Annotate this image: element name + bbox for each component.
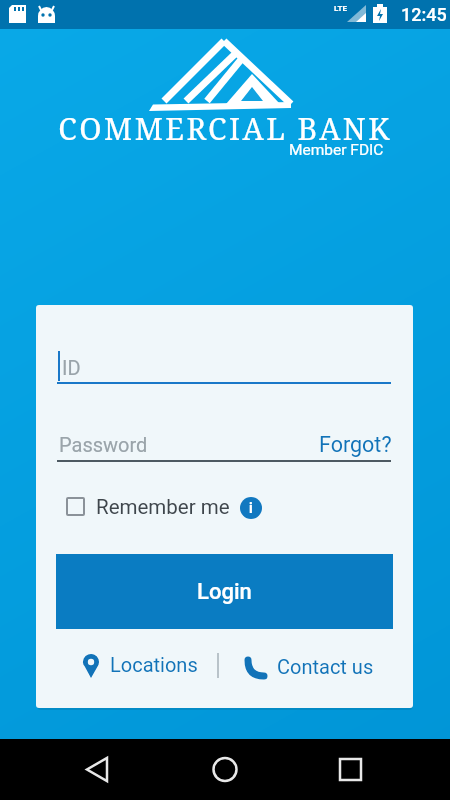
button[interactable]: i: [240, 497, 262, 519]
staticText: ID: [62, 356, 81, 379]
staticText: COMMERCIAL BANK: [0, 108, 450, 149]
staticText: LTE: [334, 4, 347, 13]
staticText: Login: [197, 579, 252, 605]
button[interactable]: Login: [56, 554, 393, 629]
button[interactable]: [327, 747, 372, 792]
button[interactable]: [75, 747, 120, 792]
staticText: Password: [59, 433, 148, 456]
button[interactable]: [57, 345, 391, 385]
staticText: i: [249, 500, 253, 516]
button[interactable]: Forgot?: [319, 432, 392, 457]
staticText: Member FDIC: [289, 141, 384, 159]
button[interactable]: [57, 425, 307, 463]
staticText: Remember me: [96, 495, 230, 519]
button[interactable]: [60, 489, 272, 523]
staticText: Locations: [110, 653, 198, 676]
button[interactable]: [202, 747, 247, 792]
staticText: Forgot?: [319, 432, 392, 457]
staticText: Contact us: [277, 655, 374, 678]
staticText: 12:45: [401, 4, 447, 25]
button[interactable]: Contact us: [236, 645, 381, 685]
button[interactable]: Locations: [76, 645, 201, 685]
